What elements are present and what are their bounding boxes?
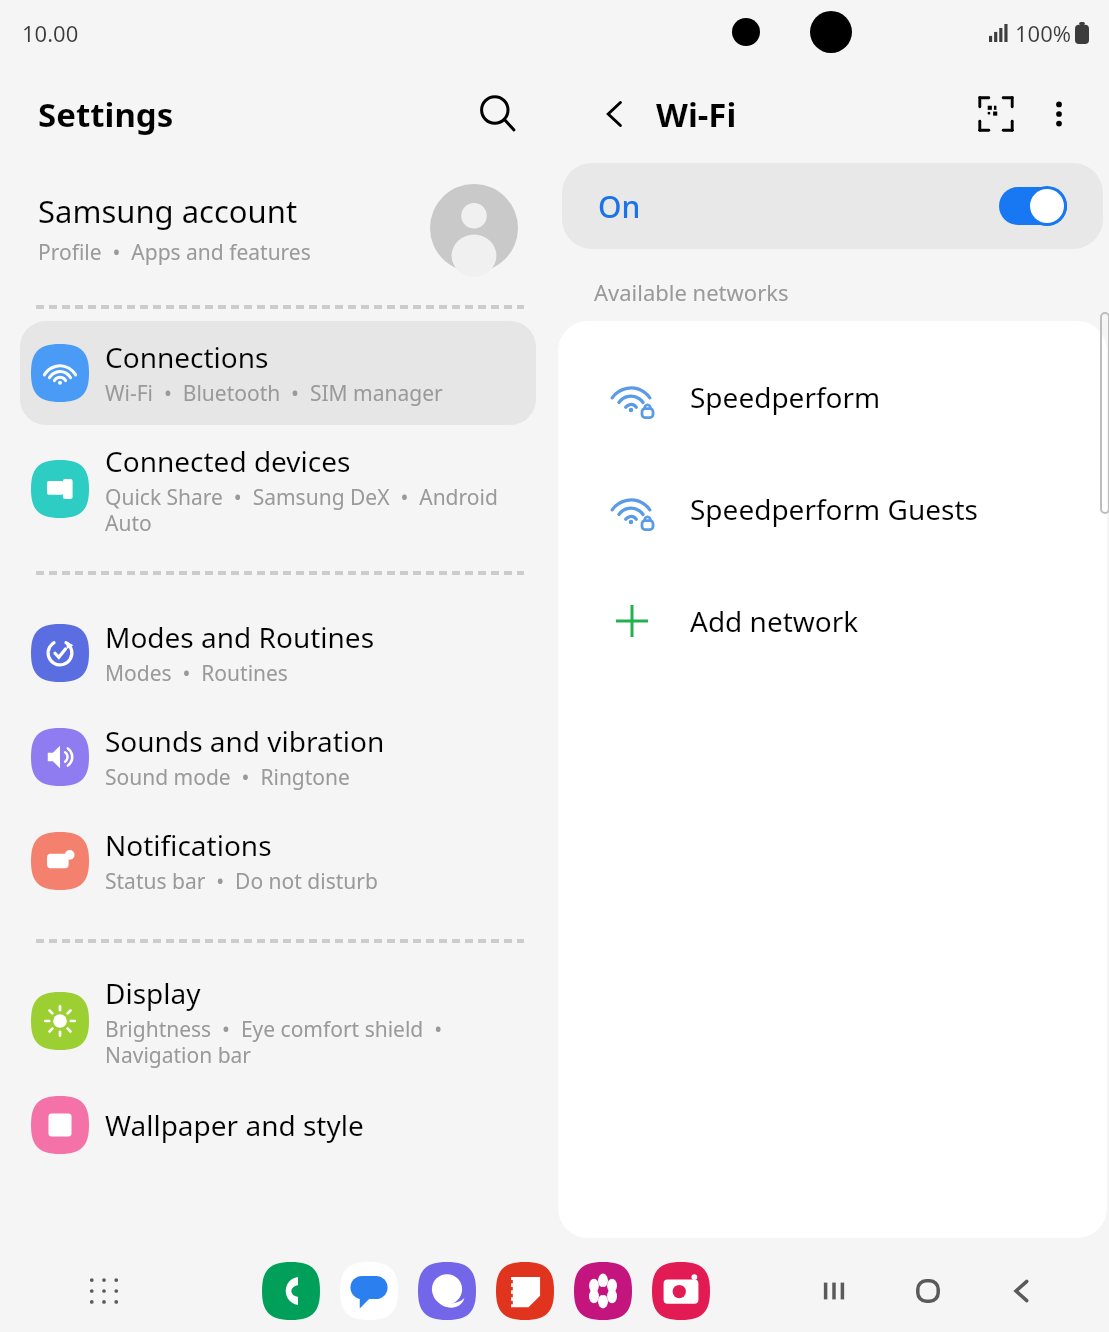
staticText: Sounds and vibration — [105, 722, 385, 760]
staticText: Add network — [690, 602, 859, 640]
button[interactable]: Notifications — [0, 809, 556, 913]
staticText: Display — [105, 974, 201, 1012]
staticText: Wi-Fi — [656, 92, 737, 137]
staticText: Connected devices — [105, 442, 351, 480]
button[interactable]: Connections — [20, 321, 536, 425]
button[interactable]: Speedperform — [558, 341, 1107, 453]
button[interactable]: Speedperform Guests — [558, 453, 1107, 565]
button[interactable]: Add network — [558, 565, 1107, 677]
staticText: Connections — [105, 338, 269, 376]
button[interactable]: Back — [991, 1260, 1053, 1322]
button[interactable]: On — [562, 163, 1103, 249]
button[interactable]: Modes and Routines — [0, 601, 556, 705]
staticText: Brightness • Eye comfort shield • Naviga… — [105, 1015, 443, 1069]
staticText: Samsung account — [38, 190, 298, 232]
button[interactable]: Gallery — [574, 1262, 632, 1320]
button[interactable]: Connected devices — [0, 437, 556, 541]
staticText: Profile • Apps and features — [38, 238, 311, 267]
staticText: Settings — [38, 92, 174, 137]
staticText: Sound mode • Ringtone — [105, 763, 350, 792]
staticText: Notifications — [105, 826, 272, 864]
button[interactable]: Apps — [78, 1265, 130, 1317]
staticText: Speedperform — [690, 378, 881, 416]
button[interactable]: Phone — [262, 1262, 320, 1320]
staticText: Speedperform Guests — [690, 490, 978, 528]
button[interactable]: Wallpaper and style — [0, 1073, 556, 1177]
staticText: Available networks — [594, 277, 789, 307]
button[interactable]: More options — [1037, 92, 1081, 136]
staticText: On — [598, 186, 641, 227]
staticText: Status bar • Do not disturb — [105, 867, 378, 896]
button[interactable]: Back — [592, 91, 638, 137]
button[interactable]: Samsung account — [0, 163, 556, 293]
button[interactable]: Search — [472, 88, 524, 140]
staticText: Quick Share • Samsung DeX • Android Auto — [105, 483, 498, 537]
staticText: Wallpaper and style — [105, 1106, 364, 1144]
staticText: Modes and Routines — [105, 618, 375, 656]
button[interactable]: Home — [897, 1260, 959, 1322]
staticText: 10.00 — [22, 18, 79, 48]
staticText: Modes • Routines — [105, 659, 288, 688]
staticText: Wi-Fi • Bluetooth • SIM manager — [105, 379, 443, 408]
button[interactable]: Sounds and vibration — [0, 705, 556, 809]
button[interactable]: Recent apps — [803, 1260, 865, 1322]
button[interactable]: Camera — [652, 1262, 710, 1320]
button[interactable]: Messages — [340, 1262, 398, 1320]
button[interactable]: Display — [0, 969, 556, 1073]
button[interactable]: Internet — [418, 1262, 476, 1320]
button[interactable]: Scan QR code — [971, 89, 1021, 139]
staticText: 100% — [1015, 18, 1072, 48]
button[interactable]: Notes — [496, 1262, 554, 1320]
